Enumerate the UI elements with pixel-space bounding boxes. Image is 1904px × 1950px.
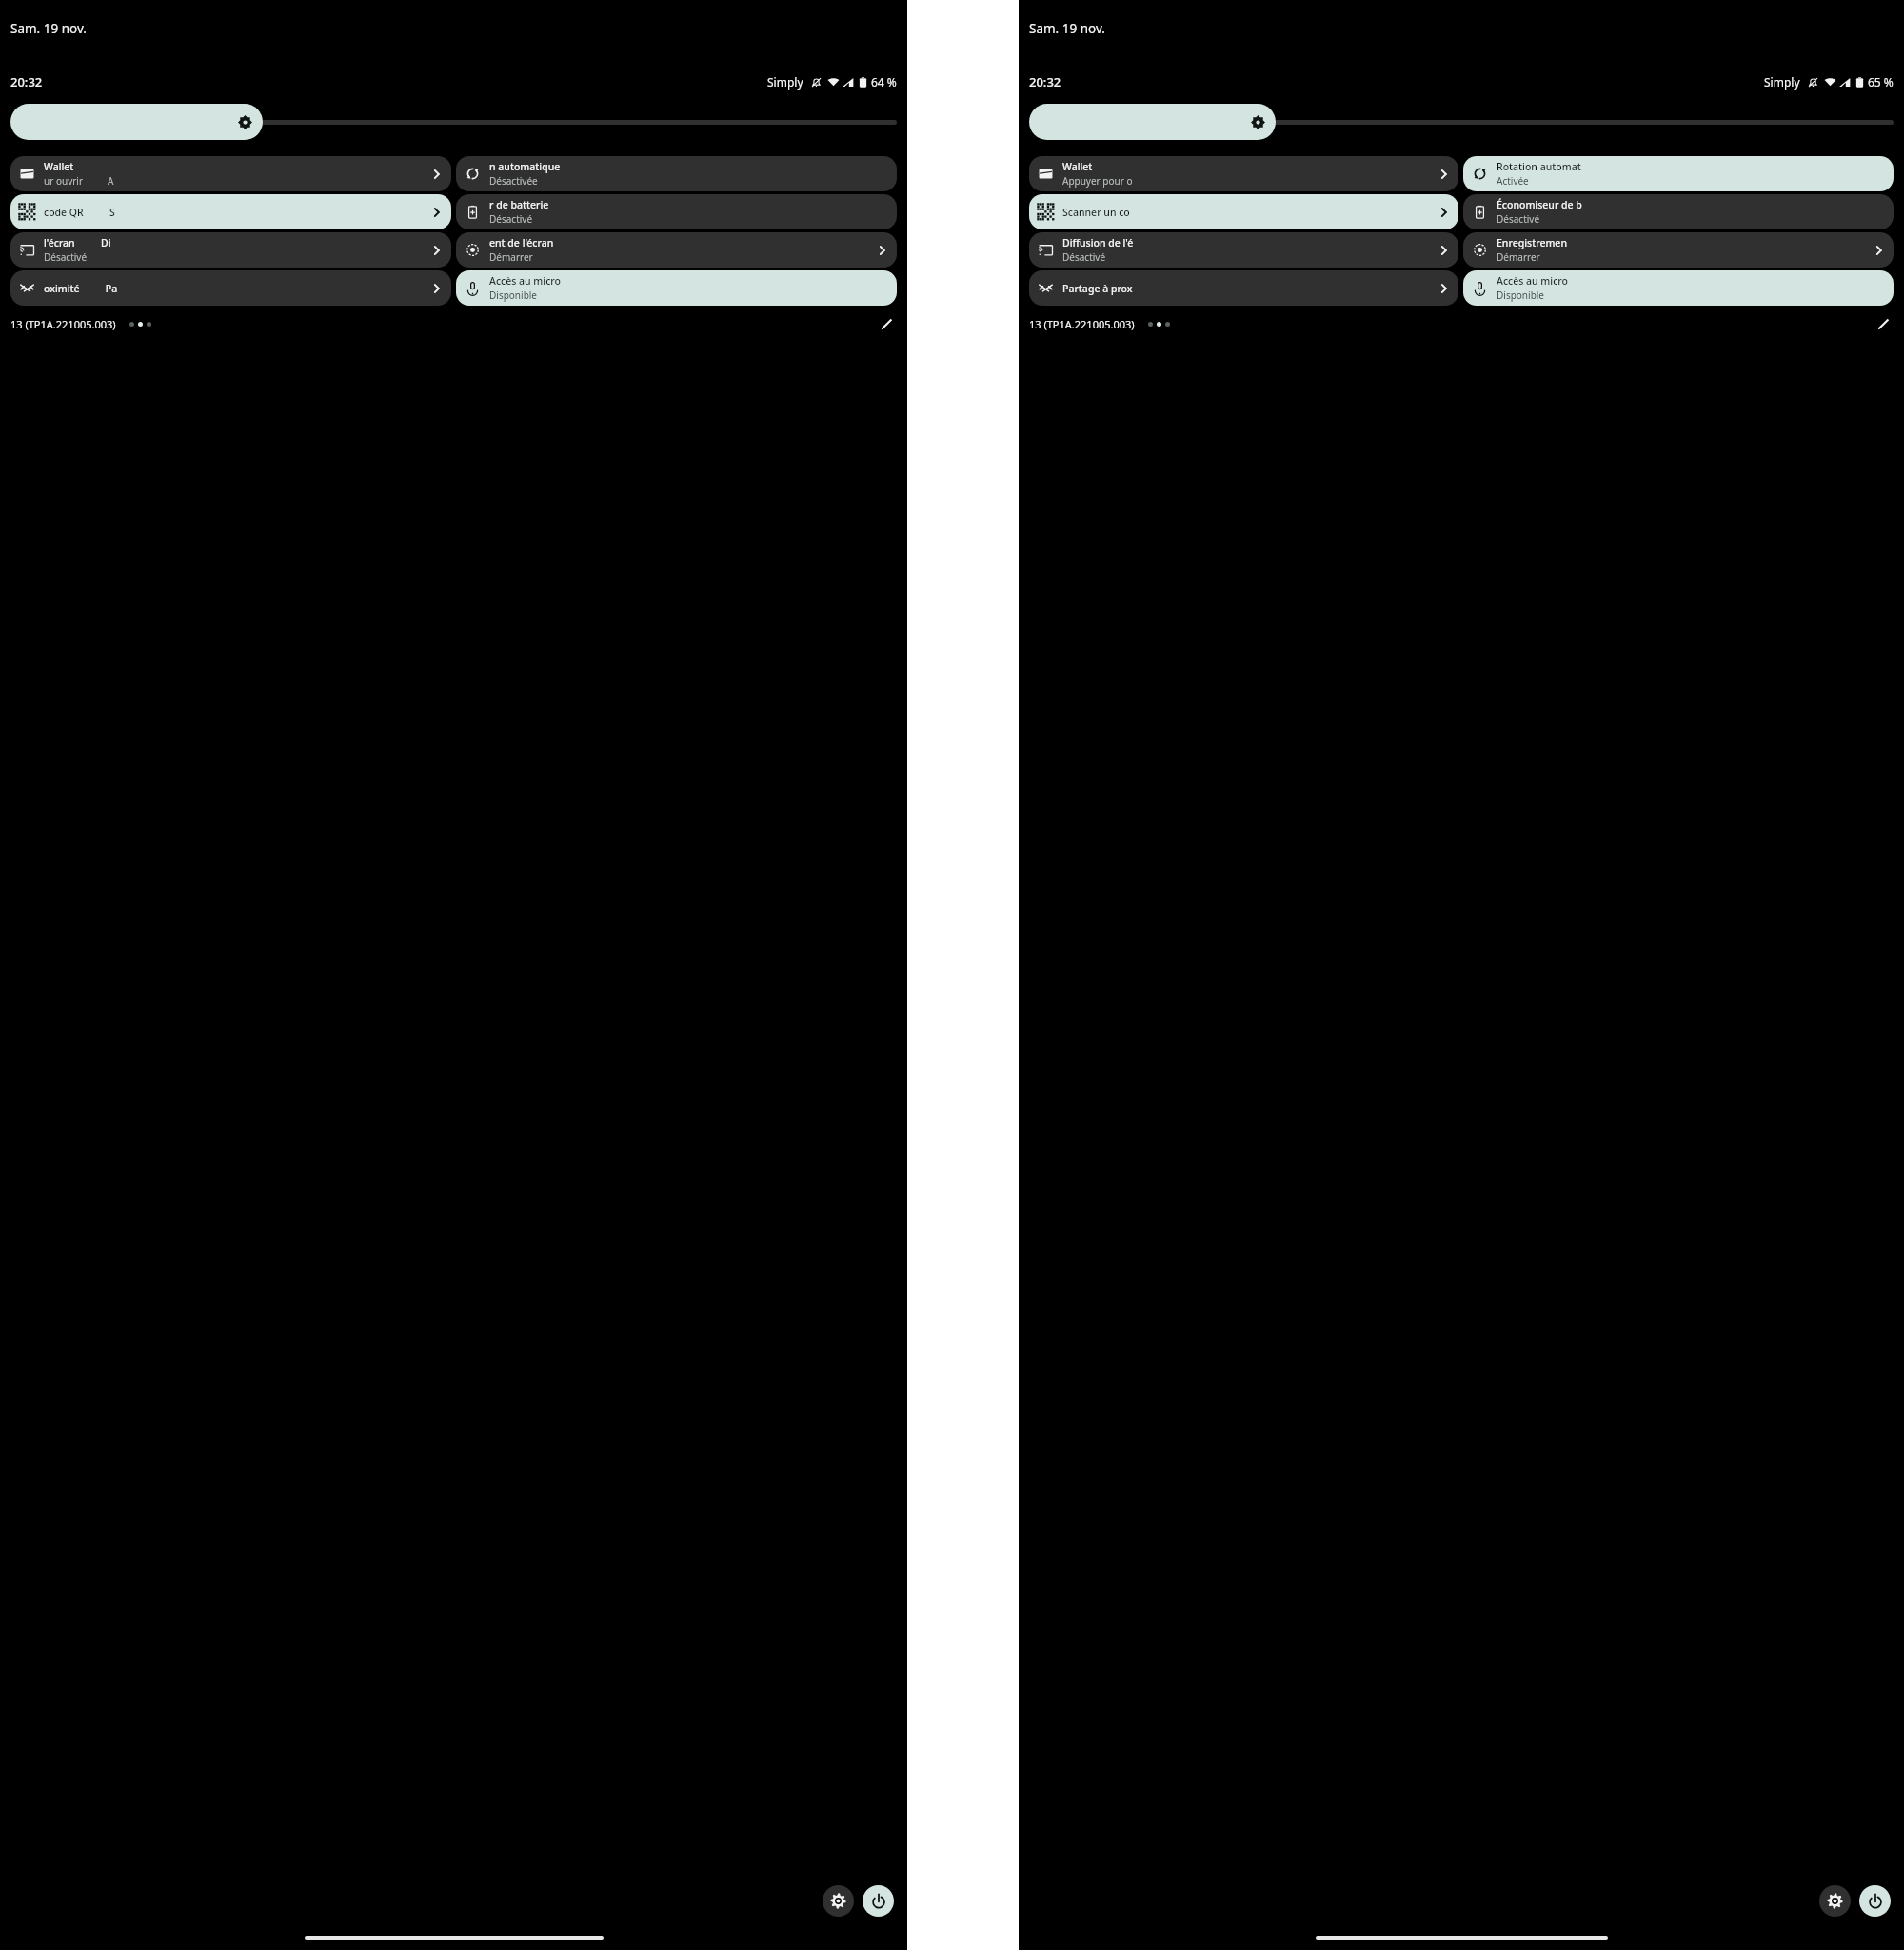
staticText: Sam. 19 nov. bbox=[10, 20, 87, 37]
staticText: Simply bbox=[767, 74, 803, 90]
staticText: n automatique bbox=[489, 160, 561, 173]
staticText: ent de l'écran bbox=[489, 236, 554, 249]
staticText: 20:32 bbox=[1029, 73, 1061, 90]
button[interactable]: Accès au micro bbox=[456, 270, 897, 306]
button[interactable]: oximité Pa bbox=[10, 270, 451, 306]
staticText: Démarrer bbox=[489, 250, 533, 264]
staticText: Activée bbox=[1497, 174, 1529, 188]
staticText: Enregistremen bbox=[1497, 236, 1567, 249]
button[interactable]: Power bbox=[1859, 1885, 1891, 1917]
button[interactable]: Brightness bbox=[1029, 104, 1894, 140]
button[interactable]: Wallet bbox=[10, 156, 451, 191]
button[interactable]: Edit tiles bbox=[1873, 313, 1894, 334]
button[interactable]: Scanner un co bbox=[1029, 194, 1458, 229]
staticText: Désactivée bbox=[489, 174, 538, 188]
staticText: 20:32 bbox=[10, 73, 43, 90]
staticText: Partage à prox bbox=[1062, 282, 1133, 295]
button[interactable]: l'écran Di bbox=[10, 232, 451, 268]
staticText: Diffusion de l'é bbox=[1062, 236, 1134, 249]
staticText: Désactivé bbox=[1062, 250, 1106, 264]
button[interactable]: Partage à prox bbox=[1029, 270, 1458, 306]
button[interactable]: Brightness bbox=[10, 104, 897, 140]
staticText: ur ouvrir A bbox=[44, 174, 116, 188]
staticText: Rotation automat bbox=[1497, 160, 1581, 173]
button[interactable]: Wallet bbox=[1029, 156, 1458, 191]
staticText: Désactivé bbox=[489, 212, 533, 226]
staticText: 13 (TP1A.221005.003) bbox=[10, 317, 116, 331]
staticText: Wallet bbox=[1062, 160, 1093, 173]
staticText: oximité Pa bbox=[44, 282, 118, 295]
button[interactable]: Settings bbox=[1819, 1885, 1851, 1917]
staticText: code QR S bbox=[44, 206, 115, 219]
button[interactable]: Diffusion de l'é bbox=[1029, 232, 1458, 268]
staticText: 64 % bbox=[871, 74, 897, 90]
button[interactable]: Économiseur de b bbox=[1463, 194, 1894, 229]
staticText: Désactivé bbox=[44, 250, 88, 264]
staticText: Simply bbox=[1764, 74, 1800, 90]
staticText: r de batterie bbox=[489, 198, 549, 211]
staticText: Scanner un co bbox=[1062, 206, 1130, 219]
staticText: Accès au micro bbox=[1497, 274, 1568, 288]
staticText: l'écran Di bbox=[44, 236, 111, 249]
staticText: Économiseur de b bbox=[1497, 198, 1582, 211]
button[interactable]: Accès au micro bbox=[1463, 270, 1894, 306]
button[interactable]: code QR S bbox=[10, 194, 451, 229]
button[interactable]: Enregistremen bbox=[1463, 232, 1894, 268]
staticText: Démarrer bbox=[1497, 250, 1540, 264]
staticText: Wallet bbox=[44, 160, 74, 173]
button[interactable]: Power bbox=[863, 1885, 894, 1917]
staticText: Appuyer pour o bbox=[1062, 174, 1133, 188]
staticText: 65 % bbox=[1868, 74, 1894, 90]
staticText: Disponible bbox=[489, 289, 537, 302]
button[interactable]: r de batterie bbox=[456, 194, 897, 229]
button[interactable]: Edit tiles bbox=[876, 313, 897, 334]
button[interactable]: Settings bbox=[823, 1885, 854, 1917]
staticText: 13 (TP1A.221005.003) bbox=[1029, 317, 1135, 331]
staticText: Sam. 19 nov. bbox=[1029, 20, 1105, 37]
button[interactable]: ent de l'écran bbox=[456, 232, 897, 268]
button[interactable]: Rotation automat bbox=[1463, 156, 1894, 191]
staticText: Désactivé bbox=[1497, 212, 1540, 226]
staticText: Accès au micro bbox=[489, 274, 561, 288]
staticText: Disponible bbox=[1497, 289, 1544, 302]
button[interactable]: n automatique bbox=[456, 156, 897, 191]
